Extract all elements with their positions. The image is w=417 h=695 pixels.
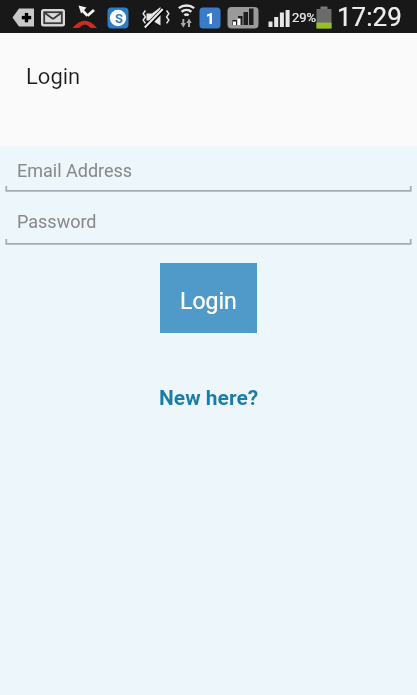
- button[interactable]: Login: [160, 263, 257, 333]
- button[interactable]: [0, 203, 417, 248]
- staticText: 29%: [292, 10, 317, 25]
- button[interactable]: New here?: [159, 386, 259, 411]
- staticText: S: [115, 11, 123, 26]
- staticText: Password: [17, 211, 97, 232]
- staticText: 1: [206, 10, 215, 28]
- staticText: Login: [180, 288, 237, 315]
- staticText: Login: [26, 64, 81, 90]
- button[interactable]: [0, 150, 417, 195]
- staticText: 17:29: [337, 2, 402, 32]
- staticText: Email Address: [17, 160, 133, 181]
- staticText: New here?: [159, 386, 259, 411]
